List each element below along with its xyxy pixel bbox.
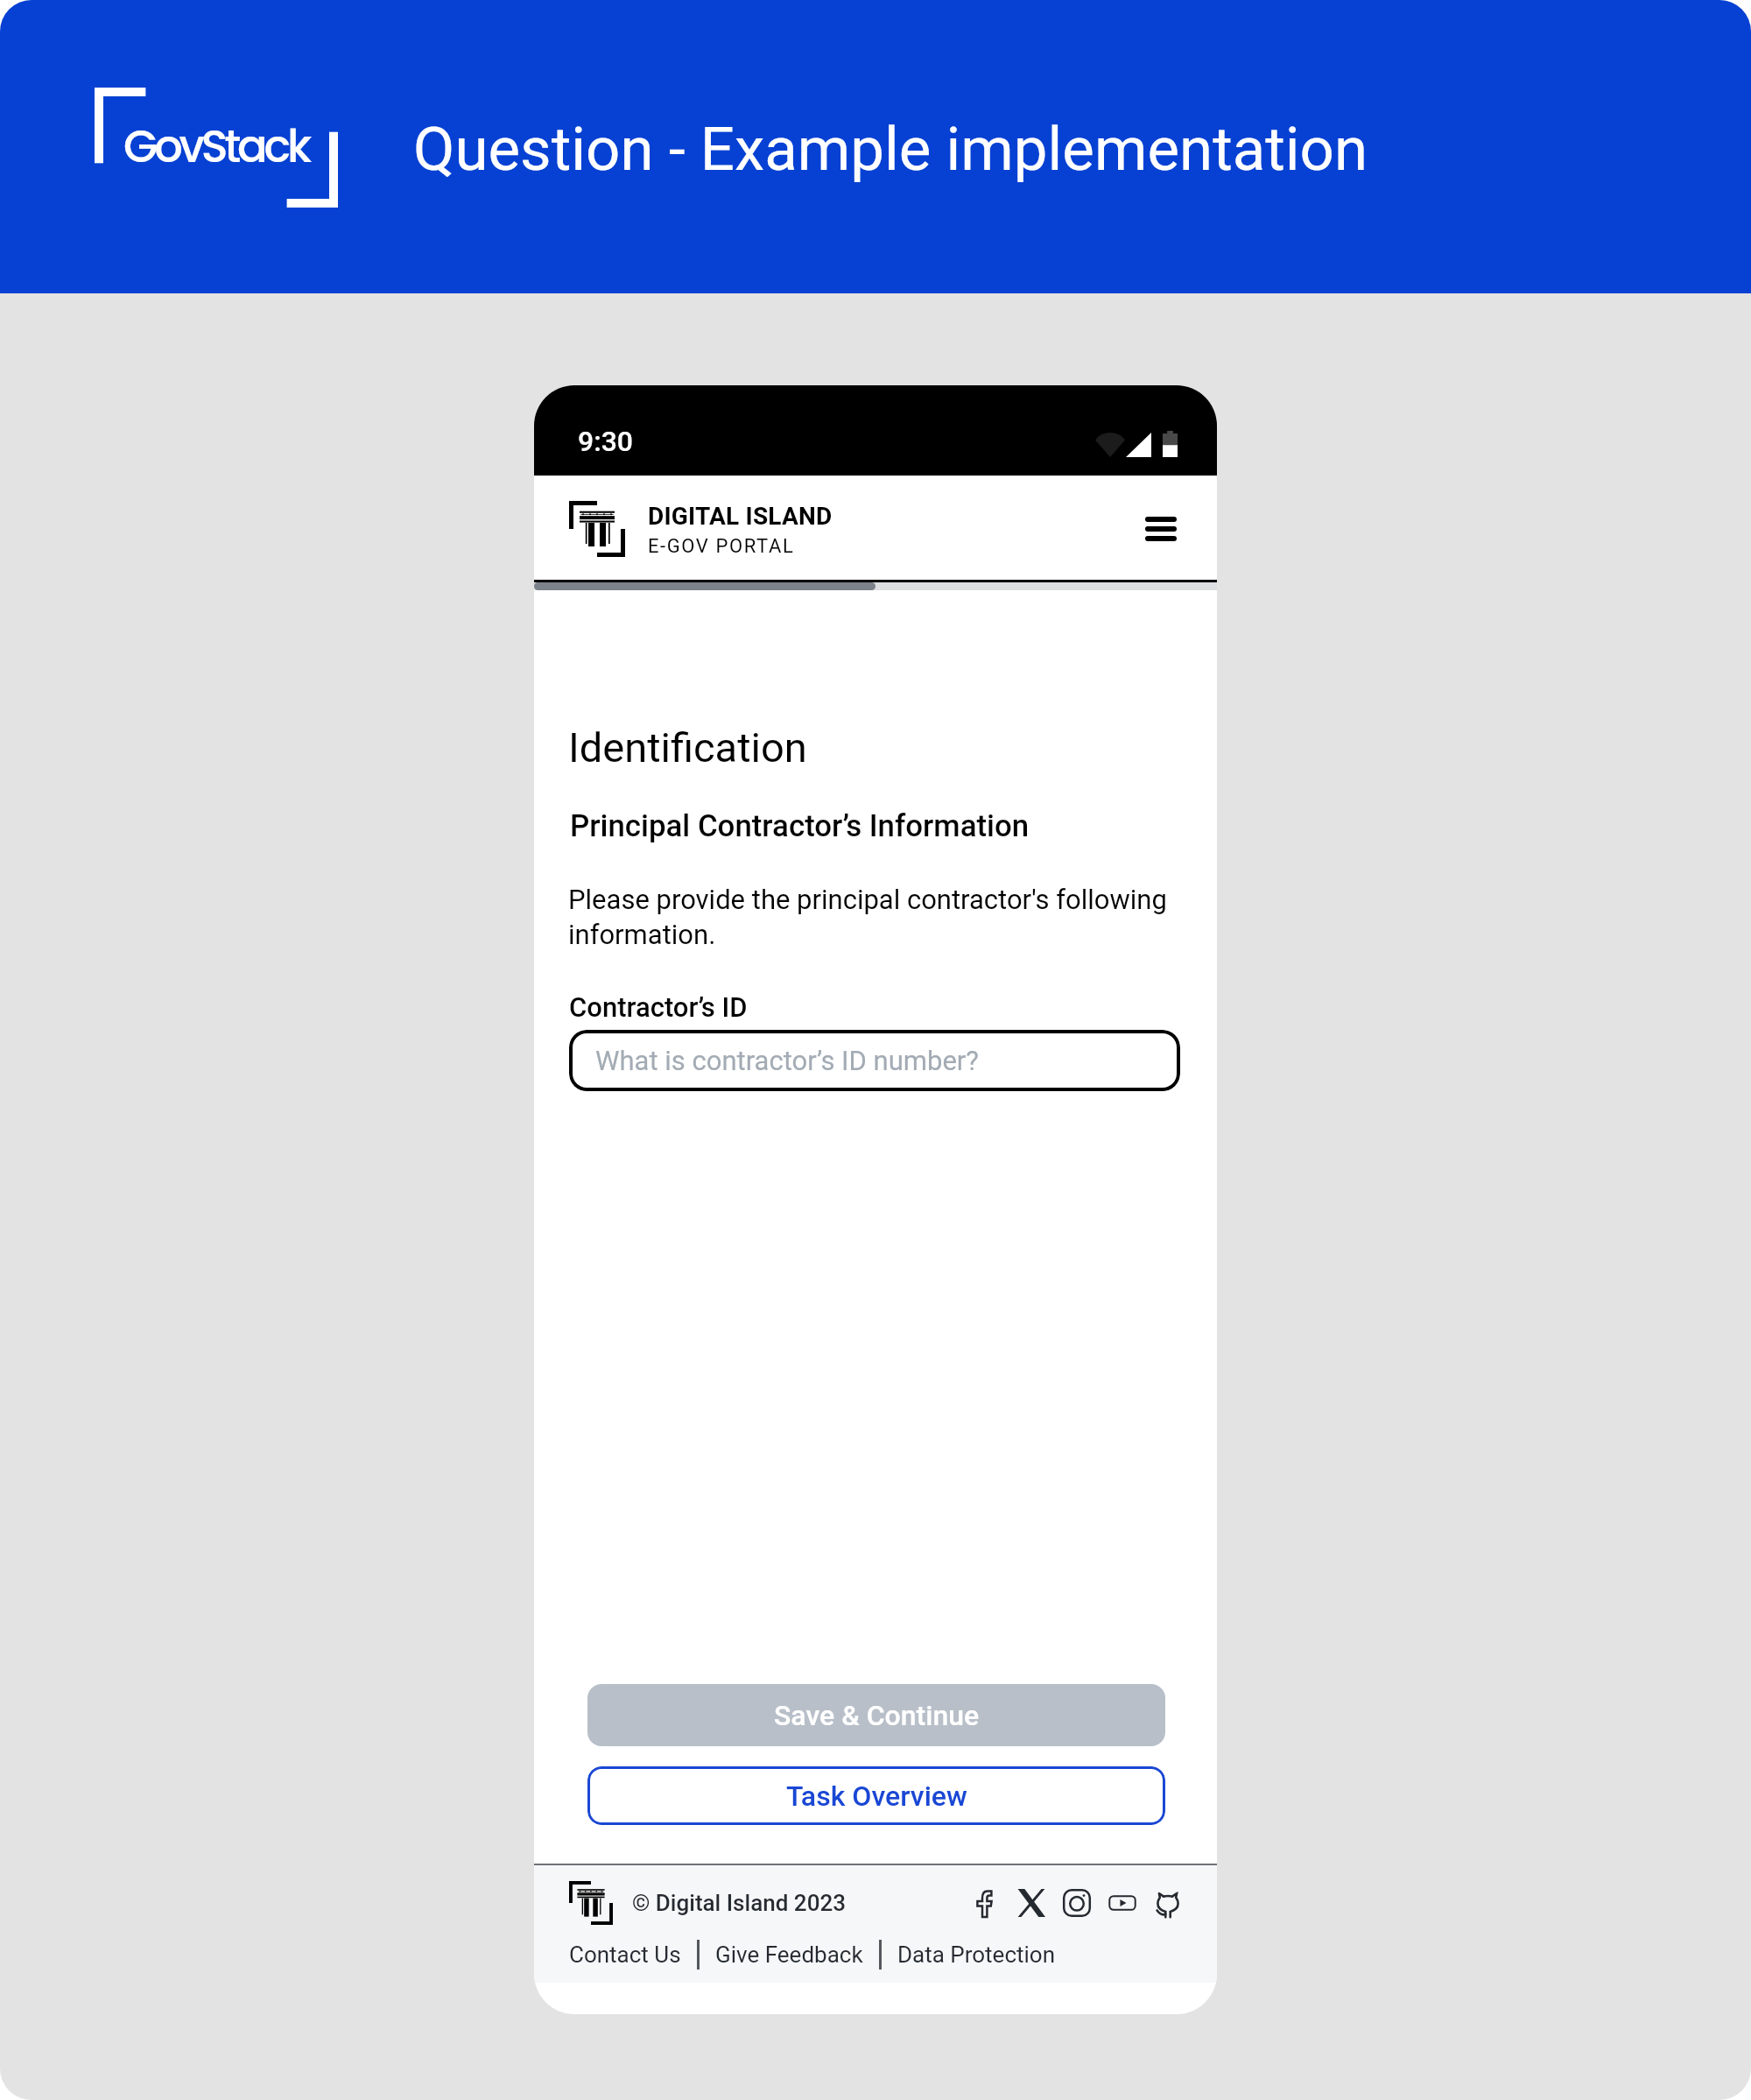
staticText: Save & Continue — [774, 1699, 980, 1732]
button[interactable]: GitHub — [1149, 1884, 1187, 1922]
button[interactable]: Menu — [1131, 499, 1191, 559]
button[interactable]: Task Overview — [587, 1766, 1165, 1825]
staticText: What is contractor’s ID number? — [595, 1045, 979, 1076]
staticText: Give Feedback — [715, 1941, 863, 1968]
staticText: Question - Example implementation — [413, 115, 1368, 185]
button[interactable]: What is contractor’s ID number? — [569, 1030, 1180, 1091]
staticText: Principal Contractor’s Information — [570, 808, 1030, 843]
button[interactable]: YouTube — [1103, 1884, 1142, 1922]
staticText: Please provide the principal contractor'… — [568, 881, 1181, 951]
button[interactable]: Contact Us — [569, 1938, 681, 1971]
button[interactable]: Facebook — [967, 1884, 1005, 1922]
button[interactable]: Give Feedback — [715, 1938, 863, 1971]
staticText: © Digital Island 2023 — [632, 1890, 846, 1916]
button[interactable]: Save & Continue — [587, 1684, 1165, 1746]
staticText: Data Protection — [897, 1941, 1056, 1968]
staticText: DIGITAL ISLAND — [648, 501, 833, 531]
staticText: Contact Us — [569, 1941, 681, 1968]
button[interactable]: Instagram — [1058, 1884, 1096, 1922]
staticText: E-GOV PORTAL — [648, 533, 795, 558]
staticText: 9:30 — [578, 425, 634, 458]
staticText: Task Overview — [786, 1779, 967, 1813]
staticText: Identification — [568, 723, 807, 772]
staticText: GovStack — [123, 129, 308, 174]
button[interactable]: X — [1012, 1884, 1051, 1922]
button[interactable]: Data Protection — [897, 1938, 1056, 1971]
staticText: Contractor’s ID — [569, 991, 748, 1023]
